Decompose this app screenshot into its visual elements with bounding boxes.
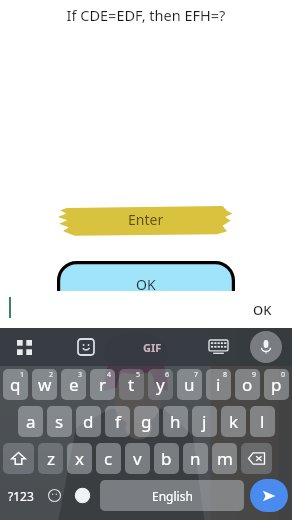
button[interactable]: Change language <box>67 479 97 512</box>
staticText: 2 <box>49 370 54 380</box>
staticText: s <box>55 410 64 433</box>
button[interactable]: ?123 <box>3 479 39 512</box>
staticText: 5 <box>136 370 141 380</box>
staticText: c <box>104 447 113 470</box>
staticText: Enter <box>128 210 164 229</box>
button[interactable]: r <box>90 369 115 400</box>
button[interactable]: i <box>206 369 231 400</box>
button[interactable]: GIF <box>133 334 172 361</box>
button[interactable]: d <box>76 406 101 437</box>
staticText: y <box>156 373 165 396</box>
staticText: h <box>170 410 181 433</box>
button[interactable]: Emoji <box>41 479 67 512</box>
staticText: r <box>99 373 107 396</box>
staticText: x <box>75 447 84 470</box>
staticText: g <box>141 410 152 433</box>
staticText: 0 <box>281 370 286 380</box>
staticText: n <box>190 447 201 470</box>
staticText: GIF <box>143 340 162 355</box>
button[interactable]: b <box>154 443 179 474</box>
staticText: o <box>242 373 253 396</box>
button[interactable]: Enter <box>57 202 235 236</box>
staticText: 7 <box>194 370 199 380</box>
staticText: ?123 <box>8 488 34 504</box>
button[interactable]: q <box>3 369 28 400</box>
staticText: i <box>216 373 221 396</box>
staticText: u <box>184 373 195 396</box>
button[interactable]: k <box>221 406 246 437</box>
button[interactable]: h <box>163 406 188 437</box>
staticText: English <box>152 488 193 504</box>
staticText: OK <box>136 275 156 291</box>
staticText: If CDE=EDF, then EFH=? <box>0 5 292 25</box>
staticText: 1 <box>20 370 25 380</box>
staticText: 6 <box>165 370 170 380</box>
staticText: l <box>260 410 265 433</box>
staticText: f <box>115 410 121 433</box>
staticText: 9 <box>252 370 257 380</box>
staticText: v <box>133 447 142 470</box>
staticText: j <box>202 410 207 433</box>
button[interactable]: m <box>212 443 237 474</box>
button[interactable]: OK <box>247 297 278 323</box>
button[interactable]: v <box>125 443 150 474</box>
button[interactable]: English <box>100 480 244 511</box>
staticText: a <box>26 410 36 433</box>
staticText: m <box>217 447 233 470</box>
button[interactable]: y <box>148 369 173 400</box>
button[interactable]: g <box>134 406 159 437</box>
button[interactable]: OK <box>57 261 235 291</box>
staticText: 8 <box>223 370 228 380</box>
button[interactable]: w <box>32 369 57 400</box>
button[interactable]: p <box>264 369 289 400</box>
staticText: e <box>69 373 79 396</box>
button[interactable]: Keyboard settings <box>202 331 234 363</box>
button[interactable]: Apps <box>8 331 40 363</box>
button[interactable]: Stickers <box>70 331 102 363</box>
staticText: k <box>229 410 239 433</box>
staticText: q <box>10 373 21 396</box>
button[interactable]: f <box>105 406 130 437</box>
button[interactable]: z <box>38 443 63 474</box>
staticText: 3 <box>78 370 83 380</box>
staticText: 4 <box>107 370 112 380</box>
staticText: b <box>161 447 172 470</box>
button[interactable]: Backspace <box>241 443 272 474</box>
button[interactable]: x <box>67 443 92 474</box>
staticText: OK <box>253 301 272 319</box>
button[interactable]: j <box>192 406 217 437</box>
button[interactable]: u <box>177 369 202 400</box>
button[interactable]: n <box>183 443 208 474</box>
staticText: p <box>271 373 282 396</box>
staticText: z <box>47 447 55 470</box>
button[interactable]: o <box>235 369 260 400</box>
button[interactable]: a <box>18 406 43 437</box>
button[interactable]: l <box>250 406 275 437</box>
staticText: w <box>38 373 52 396</box>
button[interactable]: Send <box>250 479 288 512</box>
staticText: d <box>83 410 94 433</box>
button[interactable]: Voice input <box>250 331 282 363</box>
button[interactable]: Shift <box>3 443 34 474</box>
button[interactable]: c <box>96 443 121 474</box>
button[interactable]: s <box>47 406 72 437</box>
staticText: t <box>128 373 135 396</box>
button[interactable]: e <box>61 369 86 400</box>
button[interactable]: t <box>119 369 144 400</box>
